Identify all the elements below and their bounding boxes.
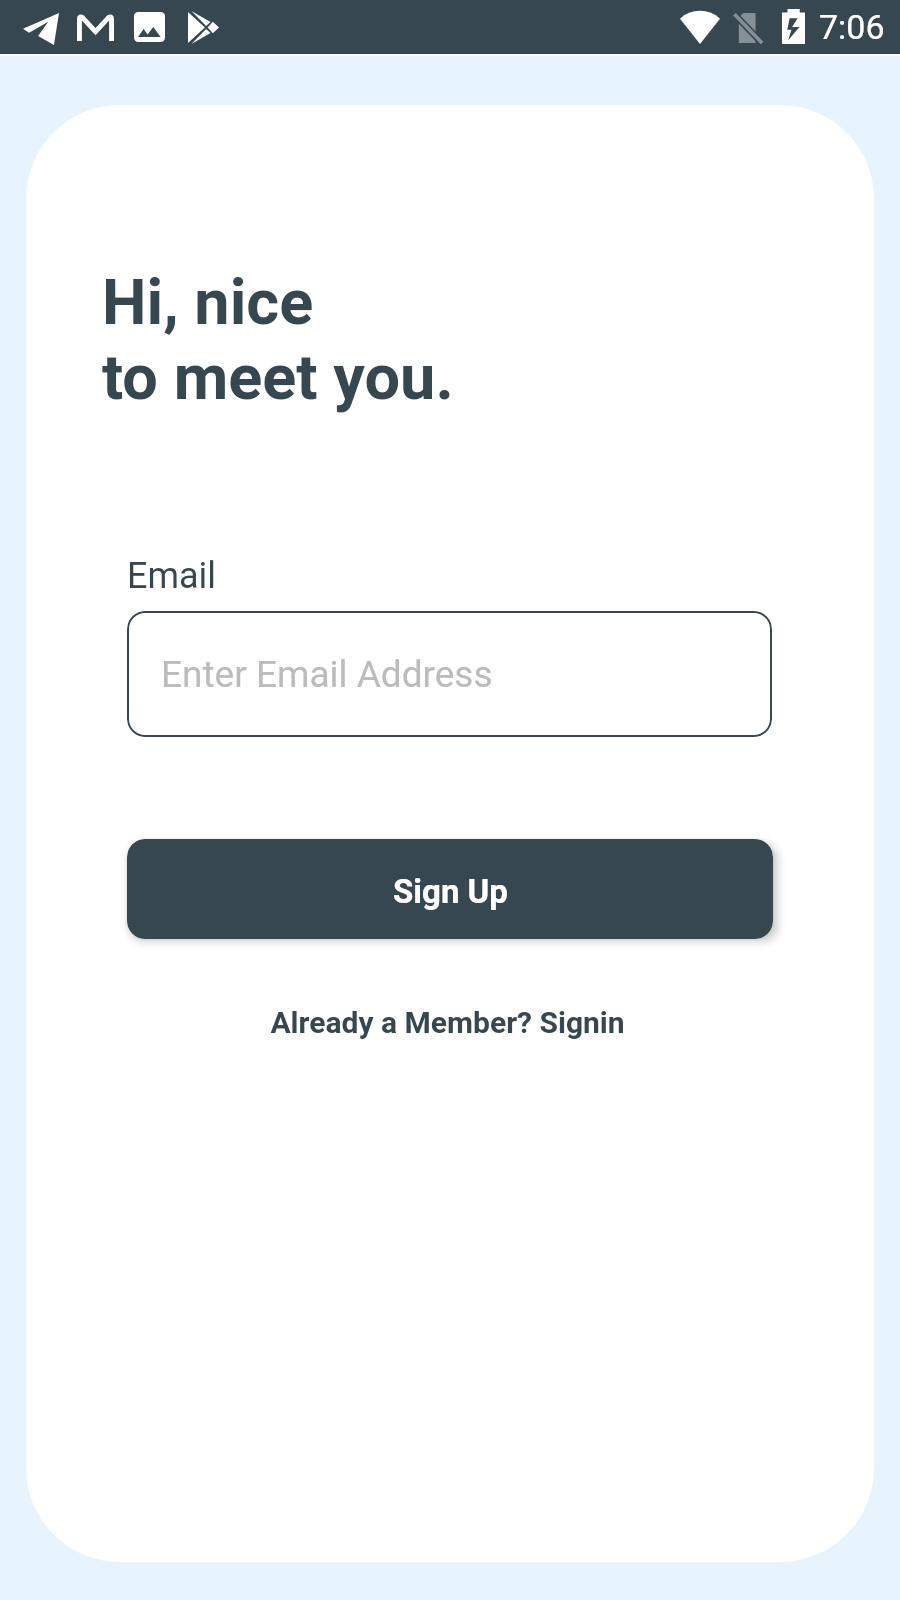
other: Telegram	[23, 13, 59, 45]
other: No SIM card	[732, 12, 763, 44]
staticText: Hi, nice to meet you.	[102, 266, 454, 414]
other: Play Store	[188, 11, 219, 44]
button[interactable]: Enter Email Address	[127, 611, 772, 737]
other: Photos	[134, 12, 165, 42]
other: Wi-Fi	[680, 8, 720, 44]
other: Gmail	[77, 13, 114, 41]
button[interactable]: Sign Up	[127, 839, 773, 939]
staticText: 7:06	[819, 7, 885, 47]
other: Battery charging	[782, 9, 805, 44]
button[interactable]: Already a Member? Signin	[256, 996, 639, 1049]
staticText: Email	[127, 555, 217, 597]
staticText: Already a Member? Signin	[270, 1005, 625, 1040]
staticText: Enter Email Address	[161, 653, 493, 696]
staticText: Sign Up	[393, 872, 508, 911]
